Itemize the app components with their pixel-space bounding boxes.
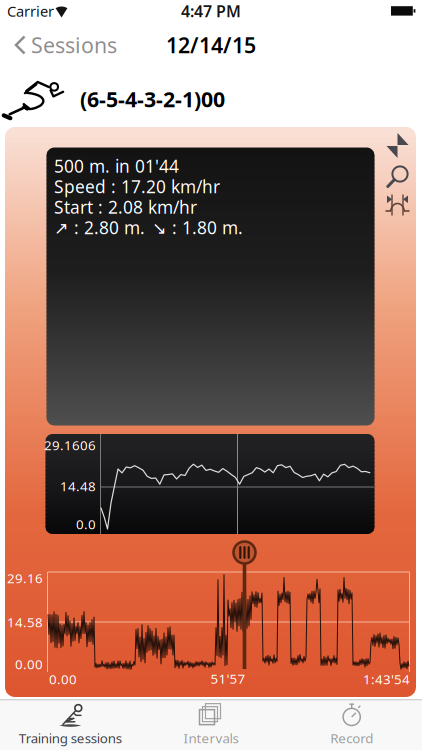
staticText: (6-5-4-3-2-1)00 bbox=[80, 85, 225, 113]
staticText: 500 m. in 01'44 bbox=[54, 154, 179, 177]
staticText: Training sessions bbox=[19, 729, 122, 747]
button[interactable]: Markers bbox=[386, 133, 409, 158]
button[interactable]: Merge intervals bbox=[385, 194, 409, 216]
staticText: 29.1606 bbox=[44, 436, 96, 454]
staticText: ↘ : 1.80 m. bbox=[152, 216, 243, 239]
staticText: Record bbox=[330, 729, 373, 747]
staticText: 0.0 bbox=[76, 515, 96, 533]
button[interactable]: Back to Sessions bbox=[12, 22, 132, 66]
button[interactable]: Scrub position bbox=[231, 541, 257, 671]
staticText: Sessions bbox=[31, 31, 117, 59]
button[interactable]: Record bbox=[292, 701, 412, 749]
staticText: 14.48 bbox=[60, 477, 96, 495]
staticText: 51'57 bbox=[210, 670, 245, 687]
button[interactable]: Zoom bbox=[386, 165, 409, 188]
staticText: Start : 2.08 km/hr bbox=[54, 195, 197, 218]
staticText: 29.16 bbox=[7, 569, 43, 587]
button[interactable]: Intervals bbox=[151, 701, 271, 749]
staticText: Speed : 17.20 km/hr bbox=[54, 175, 220, 198]
staticText: 0.00 bbox=[49, 670, 77, 688]
staticText: 1:43'54 bbox=[363, 670, 410, 688]
staticText: Carrier bbox=[7, 1, 54, 21]
staticText: 0.00 bbox=[15, 655, 43, 673]
staticText: 12/14/15 bbox=[166, 31, 256, 59]
staticText: 14.58 bbox=[7, 613, 43, 631]
staticText: ↗ : 2.80 m. bbox=[54, 216, 145, 239]
staticText: Intervals bbox=[183, 729, 238, 747]
staticText: 4:47 PM bbox=[181, 0, 241, 22]
button[interactable]: Training sessions bbox=[5, 701, 135, 749]
